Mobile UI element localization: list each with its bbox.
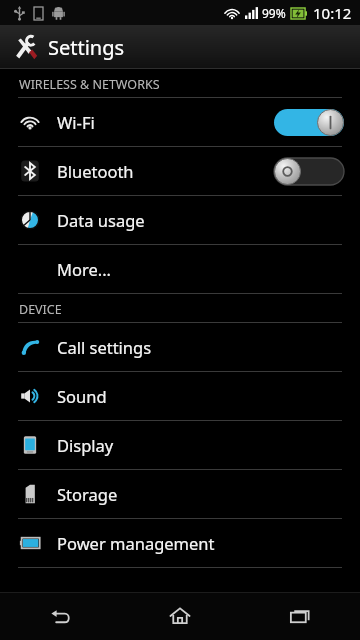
staticText: Display: [57, 434, 114, 456]
button[interactable]: Toggle off: [274, 158, 344, 185]
button[interactable]: Wi-Fi: [0, 98, 360, 146]
button[interactable]: Bluetooth: [0, 147, 360, 195]
button[interactable]: Power management: [0, 519, 360, 567]
staticText: Sound: [57, 385, 107, 407]
button[interactable]: Display: [0, 421, 360, 469]
staticText: Storage: [57, 483, 118, 505]
staticText: More...: [57, 258, 112, 280]
staticText: Data usage: [57, 209, 145, 231]
staticText: DEVICE: [19, 301, 62, 318]
button[interactable]: Toggle on: [274, 109, 344, 136]
staticText: 10:12: [313, 3, 352, 23]
staticText: Power management: [57, 532, 215, 554]
staticText: Wi-Fi: [57, 111, 95, 133]
button[interactable]: Home: [120, 592, 240, 640]
staticText: Settings: [48, 34, 125, 61]
staticText: WIRELESS & NETWORKS: [19, 76, 160, 93]
button[interactable]: Back: [0, 592, 120, 640]
staticText: Call settings: [57, 336, 152, 358]
staticText: 99%: [262, 5, 286, 21]
button[interactable]: Sound: [0, 372, 360, 420]
button[interactable]: Call settings: [0, 323, 360, 371]
staticText: Bluetooth: [57, 160, 134, 182]
button[interactable]: More...: [0, 245, 360, 293]
button[interactable]: Storage: [0, 470, 360, 518]
button[interactable]: Data usage: [0, 196, 360, 244]
button[interactable]: Recent apps: [240, 592, 360, 640]
